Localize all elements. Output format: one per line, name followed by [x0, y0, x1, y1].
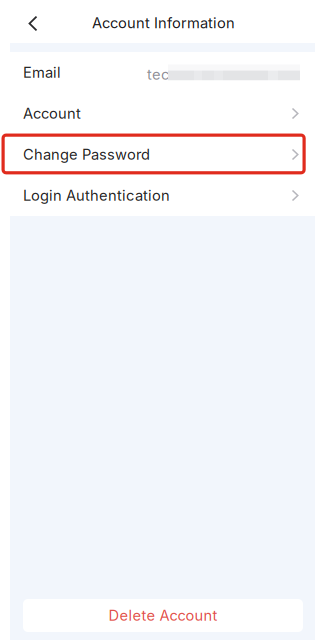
staticText: Account Information: [92, 14, 235, 32]
staticText: tech: [147, 65, 178, 83]
button[interactable]: Change Password: [0, 134, 315, 175]
staticText: Change Password: [23, 146, 150, 163]
staticText: Login Authentication: [23, 187, 170, 204]
button[interactable]: Account: [0, 93, 315, 134]
button[interactable]: Back: [14, 0, 52, 43]
button[interactable]: Login Authentication: [0, 175, 315, 216]
staticText: Delete Account: [108, 607, 217, 624]
staticText: Email: [23, 64, 61, 81]
button[interactable]: Delete Account: [23, 599, 303, 632]
staticText: Account: [23, 105, 81, 122]
